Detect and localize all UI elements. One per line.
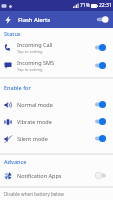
staticText: 71% bbox=[80, 2, 90, 9]
staticText: Disable when battery below bbox=[4, 191, 64, 197]
button[interactable]: Incoming Call bbox=[0, 38, 113, 56]
button[interactable]: Normal mode bbox=[0, 96, 113, 113]
staticText: Incoming SMS bbox=[17, 59, 55, 66]
staticText: Tap to setting bbox=[17, 67, 43, 72]
staticText: Enable for bbox=[4, 84, 31, 91]
staticText: Incoming Call bbox=[17, 41, 53, 48]
staticText: Status bbox=[4, 30, 21, 37]
staticText: Notification Apps bbox=[17, 172, 95, 179]
staticText: Vibrate mode bbox=[17, 118, 95, 125]
staticText: 22:31 bbox=[99, 2, 112, 9]
button[interactable]: Vibrate mode bbox=[0, 113, 113, 130]
button[interactable]: Notification Apps bbox=[0, 167, 113, 184]
button[interactable]: Enable flash alerts bbox=[94, 13, 110, 26]
staticText: Normal mode bbox=[17, 101, 95, 108]
staticText: Tap to setting bbox=[17, 49, 43, 54]
button[interactable]: Silent mode bbox=[0, 130, 113, 147]
button[interactable]: Flash bbox=[3, 15, 13, 25]
button[interactable]: Incoming SMS bbox=[0, 56, 113, 74]
staticText: Flash Alerts bbox=[18, 16, 51, 24]
staticText: Advance bbox=[4, 158, 27, 165]
staticText: Silent mode bbox=[17, 135, 95, 142]
button[interactable]: Disable when battery below bbox=[0, 188, 113, 200]
